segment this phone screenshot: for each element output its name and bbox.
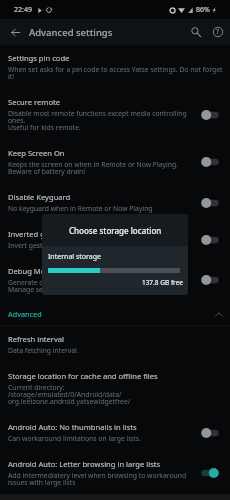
button[interactable]: Disabled bbox=[199, 107, 221, 123]
staticText: Keep Screen On bbox=[8, 148, 65, 158]
button[interactable]: Help bbox=[208, 22, 228, 42]
staticText: Inverted gestures bbox=[8, 229, 72, 239]
button[interactable]: Android Auto: Letter browsing in large l… bbox=[0, 451, 230, 495]
staticText: Internal storage bbox=[48, 252, 101, 262]
staticText: Keeps the screen on when in Remote or No… bbox=[8, 160, 178, 176]
staticText: Data fetching interval. bbox=[8, 346, 79, 355]
staticText: Storage location for cache and offline f… bbox=[8, 371, 158, 381]
staticText: Invert gesture direction bbox=[8, 241, 84, 250]
button[interactable]: Search bbox=[186, 22, 206, 42]
staticText: Debug Mode bbox=[8, 266, 55, 276]
button[interactable]: Enabled bbox=[199, 465, 221, 481]
button[interactable]: Storage location for cache and offline f… bbox=[0, 363, 230, 414]
button[interactable]: Debug Mode bbox=[0, 258, 230, 302]
staticText: Add intermediatery level when browsing t… bbox=[8, 471, 187, 487]
staticText: Refresh interval bbox=[8, 334, 65, 344]
staticText: 22:49 bbox=[14, 5, 32, 15]
staticText: ? bbox=[216, 27, 220, 37]
button[interactable]: Keep Screen On bbox=[0, 140, 230, 184]
button[interactable]: Inverted gestures bbox=[0, 221, 230, 258]
button[interactable]: Disabled bbox=[199, 154, 221, 170]
button[interactable]: Disabled bbox=[199, 195, 221, 211]
button[interactable]: Disabled bbox=[199, 272, 221, 288]
staticText: Settings pin code bbox=[8, 53, 70, 63]
staticText: When set asks for a pin code to access Y… bbox=[8, 65, 223, 81]
staticText: 137.8 GB free bbox=[48, 278, 183, 287]
staticText: 86% bbox=[196, 5, 210, 15]
staticText: Android Auto: No thumbnails in lists bbox=[8, 422, 137, 432]
staticText: No keyguard when in Remote or Now Playin… bbox=[8, 204, 153, 213]
button[interactable]: Refresh interval bbox=[0, 326, 230, 363]
staticText: Choose storage location bbox=[69, 225, 162, 236]
button[interactable]: Secure remote bbox=[0, 89, 230, 140]
button[interactable]: Settings pin code bbox=[0, 45, 230, 89]
staticText: Advanced settings bbox=[29, 26, 113, 39]
staticText: Can workaround limitations on large list… bbox=[8, 434, 141, 443]
staticText: Disable Keyguard bbox=[8, 192, 71, 202]
staticText: Android Auto: Letter browsing in large l… bbox=[8, 459, 161, 469]
staticText: Advanced bbox=[8, 309, 42, 319]
button[interactable]: Advanced bbox=[0, 302, 230, 325]
staticText: Current directory: /storage/emulated/0/A… bbox=[8, 383, 131, 406]
staticText: Generate debug logs to help support. Man… bbox=[8, 278, 128, 294]
button[interactable]: Disabled bbox=[199, 425, 221, 441]
button[interactable]: Android Auto: No thumbnails in lists bbox=[0, 414, 230, 451]
button[interactable]: Internal storage bbox=[42, 246, 188, 292]
staticText: Secure remote bbox=[8, 97, 61, 107]
button[interactable]: Back bbox=[5, 22, 25, 42]
button[interactable]: Disabled bbox=[199, 232, 221, 248]
staticText: Disable most remote functions except med… bbox=[8, 109, 187, 132]
button[interactable]: Disable Keyguard bbox=[0, 184, 230, 221]
